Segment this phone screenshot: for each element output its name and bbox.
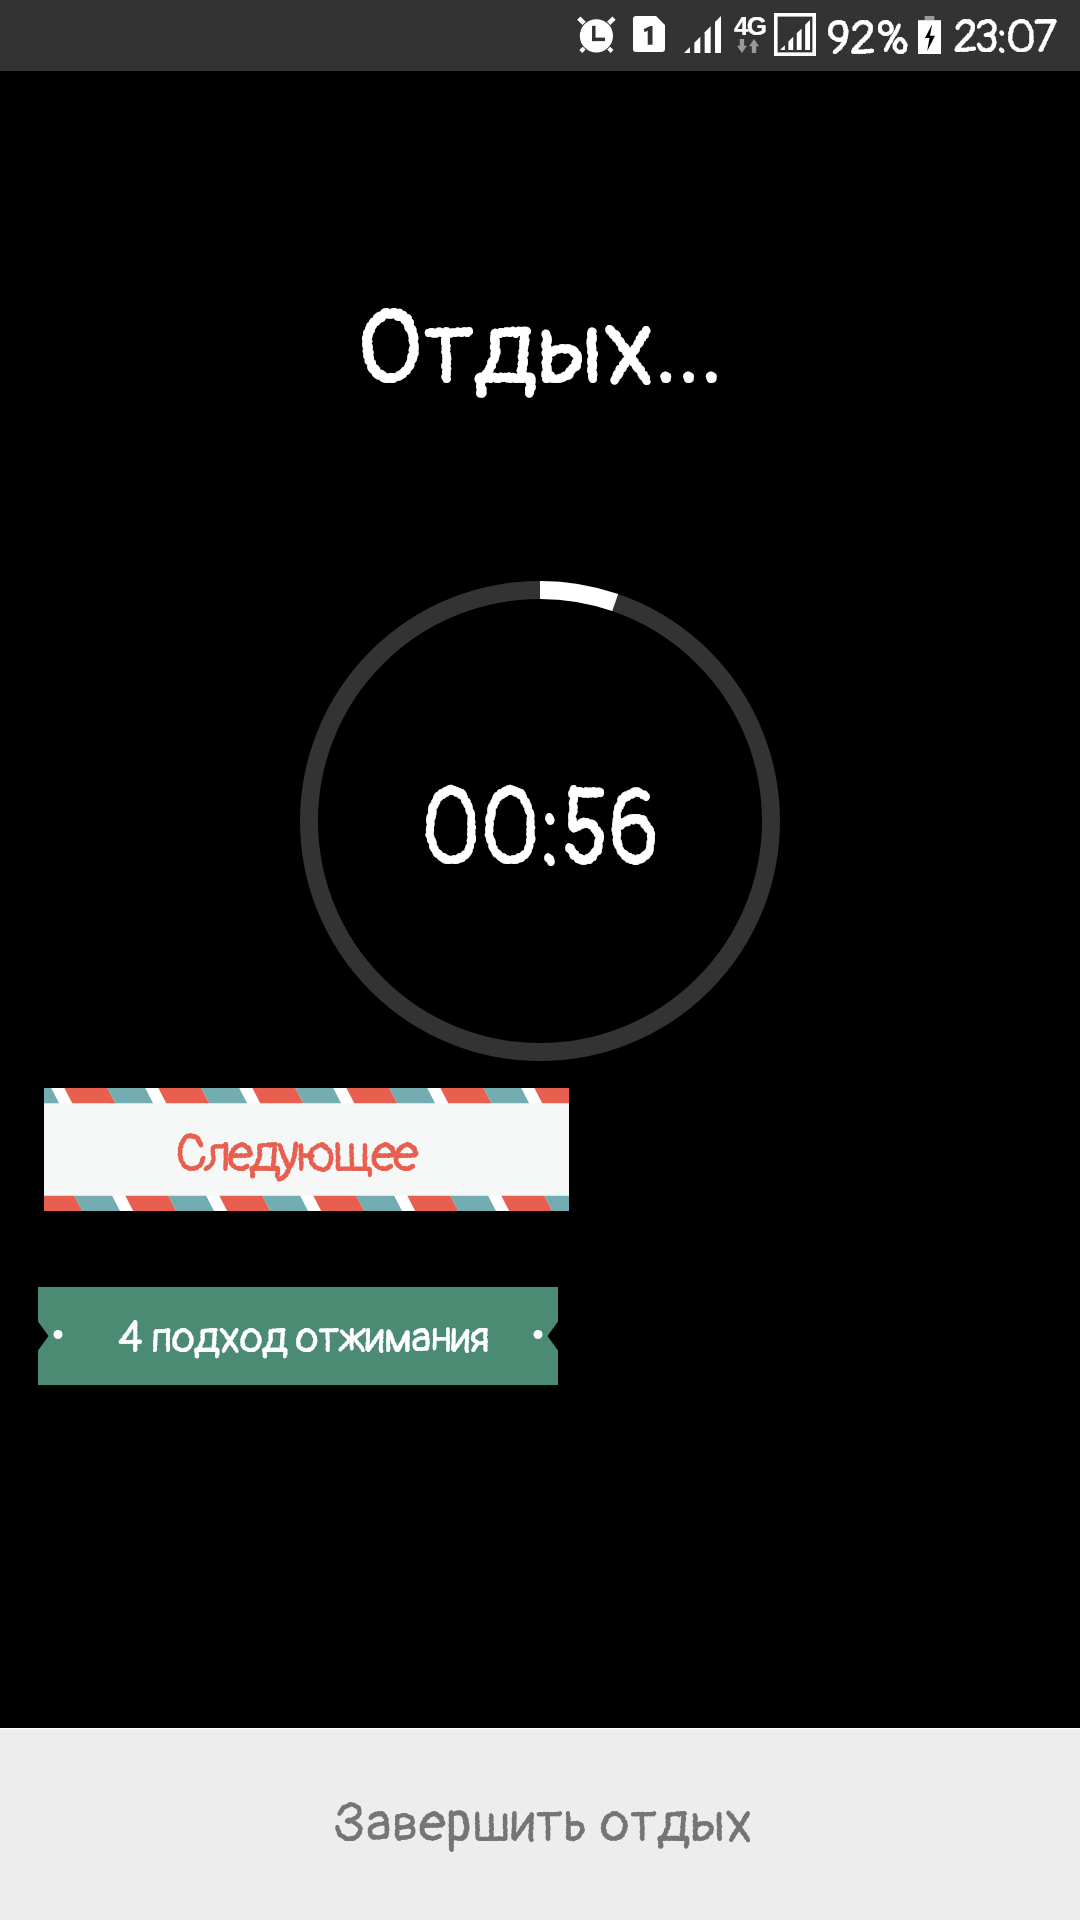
staticText: 4 подход отжимания	[118, 1312, 489, 1366]
button[interactable]: 4 подход отжимания	[38, 1287, 558, 1385]
staticText: 92%	[826, 9, 910, 69]
staticText: 4G	[734, 11, 766, 40]
button[interactable]: Завершить отдых	[0, 1728, 1080, 1920]
staticText: 23:07	[953, 10, 1055, 66]
staticText: 00:56	[421, 762, 659, 897]
staticText: Отдых...	[0, 286, 1080, 416]
staticText: Следующее	[175, 1121, 415, 1187]
button[interactable]: Следующее	[44, 1088, 569, 1211]
staticText: Завершить отдых	[333, 1789, 753, 1858]
